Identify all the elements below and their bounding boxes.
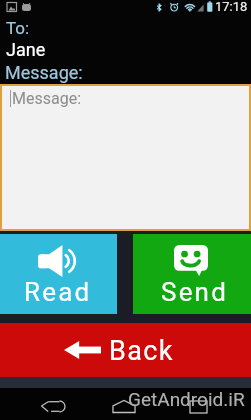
staticText: 17:18	[215, 0, 248, 13]
button[interactable]: Back	[31, 388, 75, 420]
staticText: Read	[24, 277, 92, 307]
button[interactable]: Home	[102, 388, 146, 420]
button[interactable]: Read	[0, 234, 117, 314]
staticText: Message:	[12, 89, 82, 108]
button[interactable]: Back	[0, 323, 251, 377]
staticText: GetAndroid.iR	[128, 388, 245, 410]
button[interactable]: Message:	[2, 86, 249, 229]
staticText: Jane	[6, 39, 46, 60]
staticText: To:	[6, 18, 30, 38]
staticText: Message:	[5, 62, 83, 83]
button[interactable]: Recent apps	[176, 388, 220, 420]
staticText: Back	[109, 335, 174, 367]
button[interactable]: Send	[133, 234, 251, 314]
staticText: Send	[161, 277, 229, 307]
